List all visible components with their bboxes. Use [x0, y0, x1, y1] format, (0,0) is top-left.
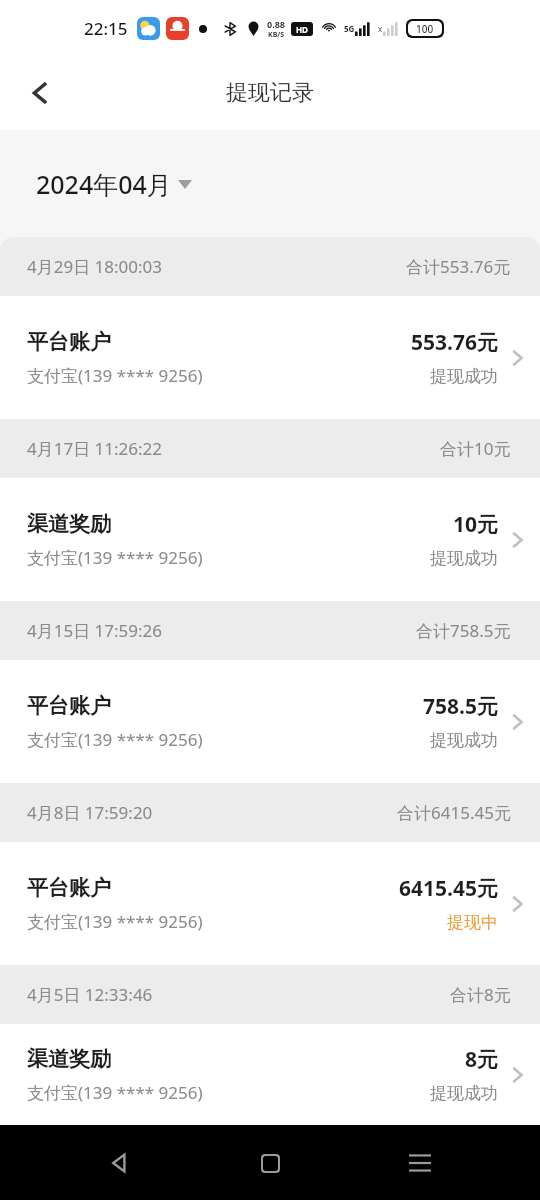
staticText: 提现成功 — [430, 366, 498, 387]
staticText: 支付宝(139 **** 9256) — [27, 546, 203, 569]
staticText: 4月29日 18:00:03 — [27, 255, 163, 278]
staticText: 8元 — [464, 1045, 498, 1074]
button[interactable]: 渠道奖励 — [0, 1024, 540, 1125]
button[interactable]: Home — [240, 1133, 300, 1193]
staticText: 553.76元 — [411, 328, 498, 357]
staticText: 提现成功 — [430, 548, 498, 569]
staticText: 合计6415.45元 — [397, 801, 511, 824]
staticText: 平台账户 — [27, 693, 111, 719]
staticText: 支付宝(139 **** 9256) — [27, 364, 203, 387]
staticText: 提现成功 — [430, 1083, 498, 1104]
staticText: 合计758.5元 — [416, 619, 511, 642]
staticText: 5G — [344, 23, 355, 34]
staticText: 6415.45元 — [399, 874, 498, 903]
staticText: 提现记录 — [226, 79, 314, 107]
staticText: x — [378, 23, 383, 34]
staticText: 合计553.76元 — [406, 255, 511, 278]
staticText: 平台账户 — [27, 875, 111, 901]
staticText: 2024年04月 — [36, 167, 172, 201]
staticText: 渠道奖励 — [27, 1046, 111, 1072]
staticText: 提现中 — [447, 912, 498, 933]
button[interactable]: Recents — [390, 1133, 450, 1193]
staticText: 提现成功 — [430, 730, 498, 751]
staticText: 4月8日 17:59:20 — [27, 801, 153, 824]
staticText: 758.5元 — [423, 692, 498, 721]
staticText: 渠道奖励 — [27, 511, 111, 537]
staticText: 100 — [416, 22, 434, 36]
button[interactable]: 平台账户 — [0, 842, 540, 965]
staticText: 支付宝(139 **** 9256) — [27, 910, 203, 933]
staticText: 合计8元 — [450, 983, 511, 1006]
staticText: 合计10元 — [440, 437, 511, 460]
button[interactable]: Back — [90, 1133, 150, 1193]
button[interactable]: 平台账户 — [0, 660, 540, 783]
staticText: 支付宝(139 **** 9256) — [27, 1081, 203, 1104]
staticText: 0.88 — [267, 18, 285, 30]
staticText: 4月17日 11:26:22 — [27, 437, 163, 460]
button[interactable]: 平台账户 — [0, 296, 540, 419]
button[interactable]: Back — [14, 67, 66, 119]
button[interactable]: 渠道奖励 — [0, 478, 540, 601]
staticText: 10元 — [452, 510, 498, 539]
staticText: KB/S — [268, 30, 285, 40]
staticText: 平台账户 — [27, 329, 111, 355]
staticText: 22:15 — [84, 17, 128, 40]
staticText: 4月5日 12:33:46 — [27, 983, 153, 1006]
staticText: 支付宝(139 **** 9256) — [27, 728, 203, 751]
staticText: 4月15日 17:59:26 — [27, 619, 163, 642]
staticText: HD — [296, 24, 308, 35]
button[interactable]: 2024年04月 — [36, 167, 540, 201]
